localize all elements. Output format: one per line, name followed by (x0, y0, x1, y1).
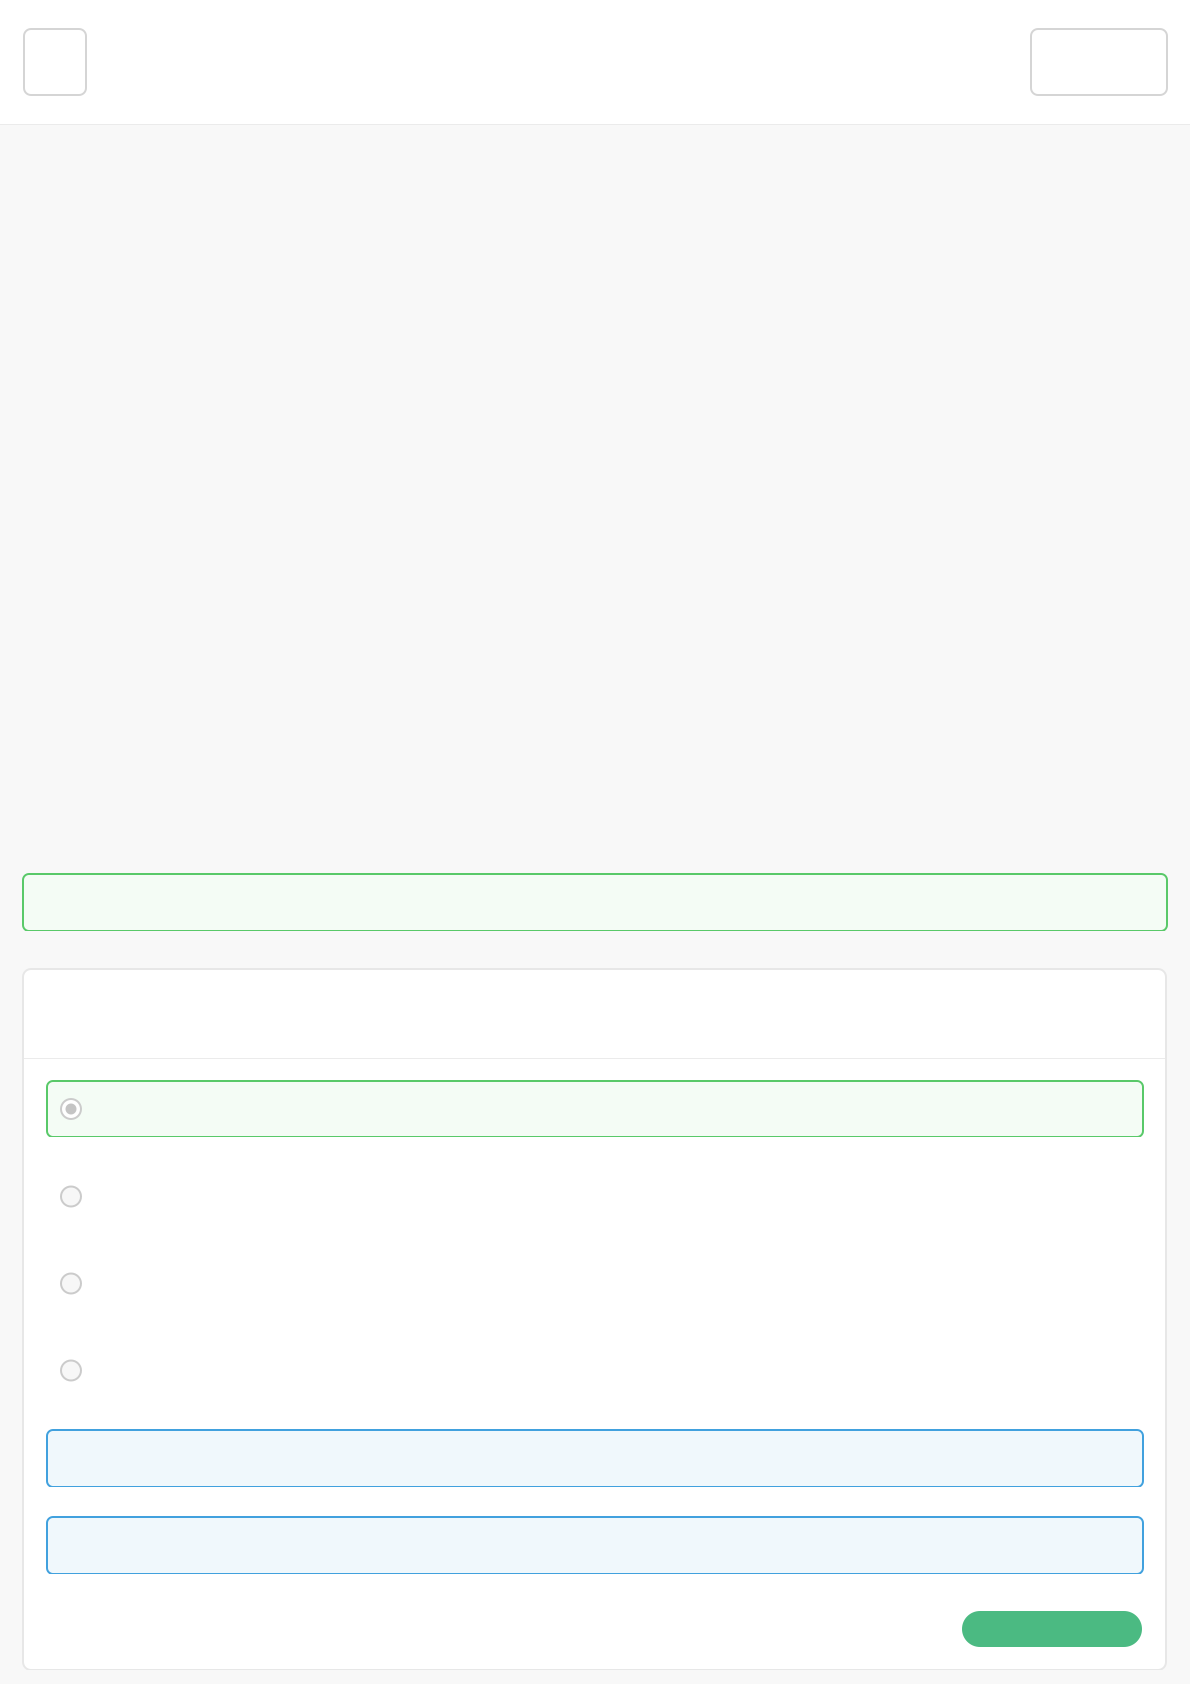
button[interactable]: Account (1031, 29, 1167, 95)
button[interactable]: Text field (47, 1430, 1143, 1487)
button[interactable]: Selected option (47, 1081, 1143, 1137)
button[interactable]: Submit (962, 1611, 1142, 1647)
button[interactable]: Menu (24, 29, 86, 95)
button[interactable]: Text field (47, 1517, 1143, 1574)
